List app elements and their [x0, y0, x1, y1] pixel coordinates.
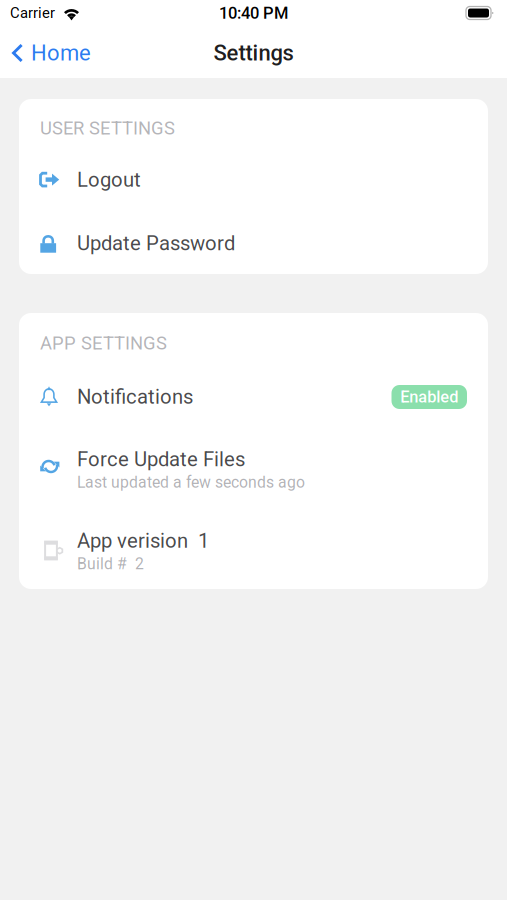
- staticText: USER SETTINGS: [40, 117, 175, 139]
- staticText: Logout: [77, 168, 141, 192]
- button[interactable]: Notifications: [19, 385, 488, 415]
- staticText: Last updated a few seconds ago: [77, 473, 305, 492]
- staticText: Force Update Files: [77, 447, 245, 471]
- staticText: 10:40 PM: [219, 3, 288, 23]
- staticText: Enabled: [400, 387, 458, 407]
- staticText: Build # 2: [77, 555, 144, 573]
- button[interactable]: Logout: [19, 168, 488, 196]
- button[interactable]: Update Password: [19, 231, 488, 259]
- staticText: Home: [31, 40, 91, 66]
- staticText: App verision 1: [77, 529, 209, 553]
- staticText: Update Password: [77, 231, 235, 255]
- staticText: Settings: [213, 40, 293, 66]
- staticText: Carrier: [10, 4, 55, 22]
- button[interactable]: Home: [0, 30, 105, 76]
- staticText: APP SETTINGS: [40, 332, 167, 354]
- button[interactable]: Force Update Files: [19, 447, 488, 487]
- staticText: Notifications: [77, 385, 193, 409]
